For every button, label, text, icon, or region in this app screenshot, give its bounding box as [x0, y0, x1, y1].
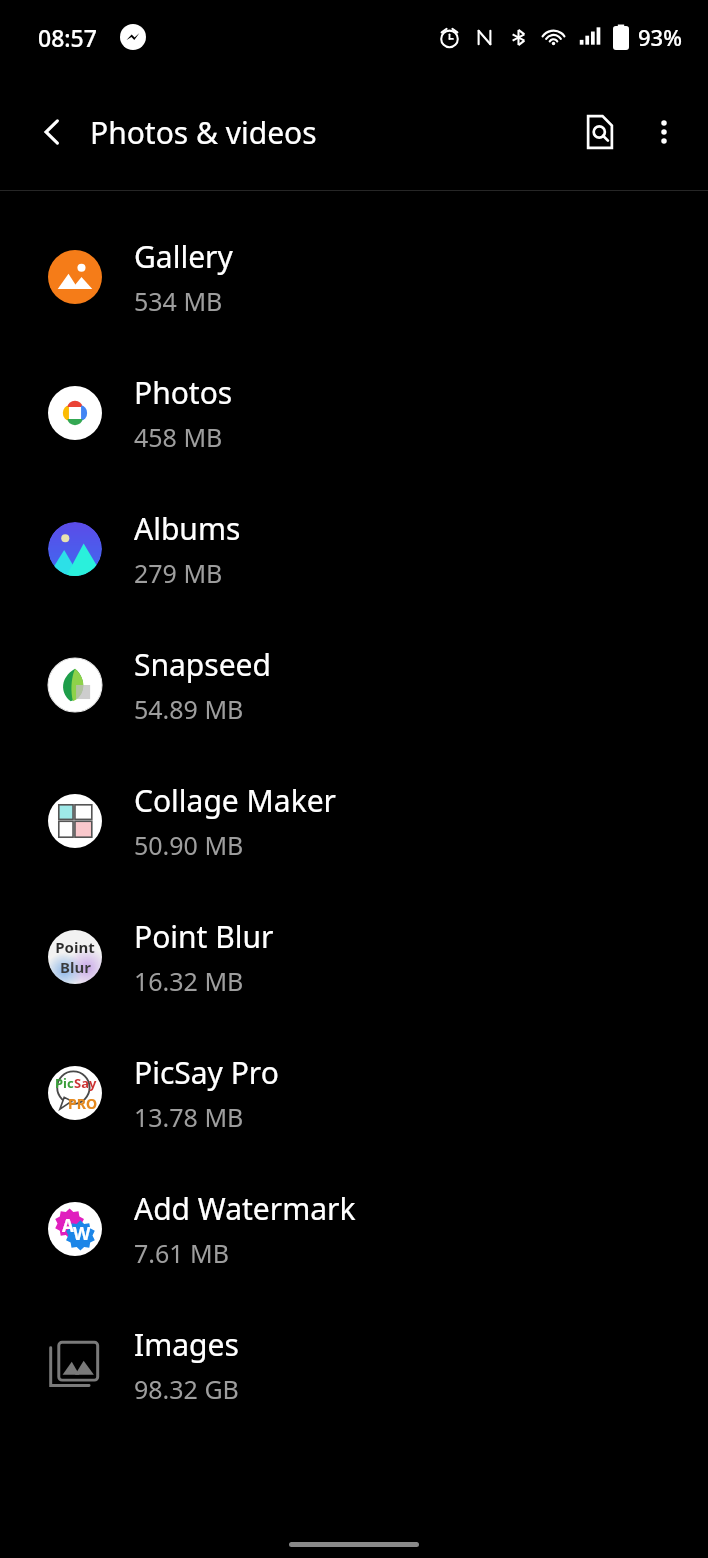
staticText: Snapseed [134, 644, 271, 685]
staticText: 13.78 MB [134, 1100, 244, 1134]
button[interactable]: Back [24, 104, 80, 160]
button[interactable]: Images [0, 1297, 708, 1433]
button[interactable]: Snapseed [0, 617, 708, 753]
button[interactable]: Photos [0, 345, 708, 481]
staticText: A [62, 1214, 74, 1237]
staticText: PicSay Pro [134, 1052, 279, 1093]
staticText: Photos & videos [90, 112, 317, 153]
staticText: W [73, 1221, 91, 1246]
staticText: Add Watermark [134, 1188, 356, 1229]
staticText: Gallery [134, 236, 233, 277]
button[interactable]: Pic [0, 1025, 708, 1161]
button[interactable]: More options [632, 100, 696, 164]
staticText: 08:57 [38, 22, 97, 53]
button[interactable]: Collage Maker [0, 753, 708, 889]
staticText: 279 MB [134, 556, 223, 590]
staticText: 93% [638, 22, 682, 52]
staticText: 98.32 GB [134, 1372, 239, 1406]
staticText: Collage Maker [134, 780, 336, 821]
staticText: Photos [134, 372, 233, 413]
button[interactable]: A [0, 1161, 708, 1297]
staticText: 16.32 MB [134, 964, 244, 998]
button[interactable]: Point [0, 889, 708, 1025]
button[interactable]: Search [568, 100, 632, 164]
staticText: Point Blur [134, 916, 274, 957]
staticText: 7.61 MB [134, 1236, 230, 1270]
staticText: Say [74, 1074, 97, 1092]
staticText: 458 MB [134, 420, 223, 454]
staticText: Point [55, 937, 95, 957]
staticText: PRO [68, 1094, 97, 1113]
staticText: Pic [55, 1074, 74, 1092]
staticText: 50.90 MB [134, 828, 244, 862]
staticText: Blur [60, 957, 91, 977]
staticText: 534 MB [134, 284, 223, 318]
staticText: Albums [134, 508, 241, 549]
button[interactable]: Gallery [0, 209, 708, 345]
staticText: 54.89 MB [134, 692, 244, 726]
button[interactable]: Albums [0, 481, 708, 617]
staticText: Images [134, 1324, 239, 1365]
